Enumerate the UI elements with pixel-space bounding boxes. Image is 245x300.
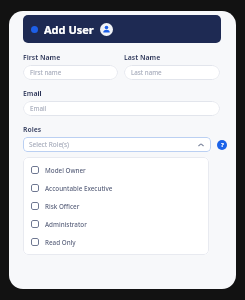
staticText: Email	[30, 104, 47, 113]
staticText: Roles	[23, 125, 42, 134]
button[interactable]: Model Owner	[23, 161, 209, 179]
staticText: First name	[30, 68, 62, 77]
staticText: Last Name	[124, 53, 161, 62]
button[interactable]: Risk Officer	[23, 197, 209, 215]
staticText: Last name	[131, 68, 162, 77]
button[interactable]: Administrator	[23, 215, 209, 233]
staticText: Risk Officer	[45, 202, 80, 211]
staticText: Add User	[44, 22, 94, 37]
button[interactable]: First name	[23, 65, 118, 80]
button[interactable]: Email	[23, 101, 220, 116]
button[interactable]: Accountable Executive	[23, 179, 209, 197]
staticText: Model Owner	[45, 166, 86, 175]
button[interactable]: User avatar	[100, 23, 113, 36]
button[interactable]: Help	[217, 140, 227, 150]
button[interactable]: Add User	[23, 15, 221, 43]
staticText: ?	[221, 141, 224, 149]
staticText: First Name	[23, 53, 61, 62]
staticText: Select Role(s)	[29, 140, 70, 149]
staticText: Administrator	[45, 220, 87, 229]
staticText: Accountable Executive	[45, 184, 113, 193]
staticText: Email	[23, 89, 42, 98]
button[interactable]: Read Only	[23, 233, 209, 251]
button[interactable]: Select Role(s)	[23, 137, 211, 152]
button[interactable]: Last name	[124, 65, 220, 80]
staticText: Read Only	[45, 238, 76, 247]
